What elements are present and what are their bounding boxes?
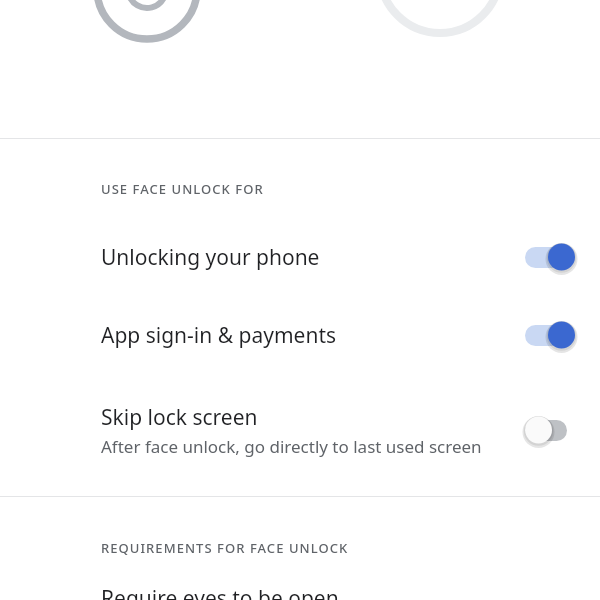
button[interactable]: Unlocking your phone toggle: [0, 218, 600, 296]
staticText: After face unlock, go directly to last u…: [101, 435, 493, 458]
button[interactable]: Skip lock screen toggle: [0, 374, 600, 486]
staticText: Require eyes to be open: [101, 584, 339, 600]
staticText: Unlocking your phone: [101, 243, 320, 272]
staticText: App sign-in & payments: [101, 321, 337, 350]
button[interactable]: App sign-in and payments toggle: [0, 296, 600, 374]
staticText: REQUIREMENTS FOR FACE UNLOCK: [101, 539, 600, 557]
button[interactable]: Require eyes to be open: [0, 584, 600, 600]
staticText: USE FACE UNLOCK FOR: [101, 180, 600, 198]
staticText: Skip lock screen: [101, 403, 258, 432]
